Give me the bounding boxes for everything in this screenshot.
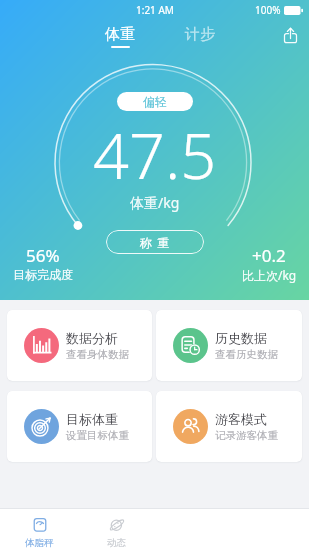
staticText: 称 重	[140, 234, 171, 250]
staticText: 体脂秤	[25, 537, 54, 549]
button[interactable]: 体脂秤	[1, 509, 78, 550]
staticText: 动态	[107, 537, 126, 549]
staticText: 记录游客体重	[215, 429, 278, 442]
staticText: 数据分析	[66, 330, 118, 346]
button[interactable]: 游客模式	[156, 391, 302, 462]
staticText: 游客模式	[215, 411, 267, 427]
staticText: 偏轻	[143, 94, 167, 109]
button[interactable]: 历史数据	[156, 310, 302, 381]
staticText: 历史数据	[215, 330, 267, 346]
staticText: 体重	[105, 25, 135, 44]
staticText: 计步	[185, 25, 215, 44]
staticText: 目标完成度	[13, 267, 73, 282]
staticText: 1:21 AM	[136, 3, 174, 17]
button[interactable]: 目标体重	[7, 391, 152, 462]
staticText: +0.2	[252, 244, 286, 267]
button[interactable]: Share	[283, 28, 298, 43]
staticText: 设置目标体重	[66, 429, 129, 442]
staticText: 56%	[26, 244, 60, 267]
button[interactable]: 数据分析	[7, 310, 152, 381]
staticText: 查看历史数据	[215, 348, 278, 361]
button[interactable]: 偏轻	[117, 92, 193, 111]
staticText: 体重/kg	[130, 193, 180, 212]
staticText: 100%	[255, 3, 281, 17]
staticText: 比上次/kg	[242, 267, 297, 283]
button[interactable]: 动态	[78, 509, 155, 550]
button[interactable]: 体重	[101, 24, 139, 49]
button[interactable]: 计步	[181, 24, 219, 49]
staticText: 47.5	[93, 112, 217, 198]
staticText: 查看身体数据	[66, 348, 129, 361]
staticText: 目标体重	[66, 411, 118, 427]
button[interactable]: 称 重	[106, 230, 204, 254]
